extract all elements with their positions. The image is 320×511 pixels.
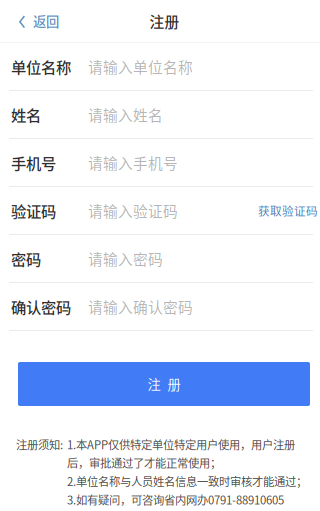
staticText: 密码 [11,247,41,270]
staticText: 请输入姓名 [88,104,163,125]
button[interactable]: 获取验证码 [248,190,318,231]
staticText: 请输入密码 [88,248,163,269]
staticText: 请输入单位名称 [88,56,193,77]
staticText: 3.如有疑问，可咨询省内网办0791-88910605 [67,491,284,508]
staticText: 手机号 [11,151,56,174]
staticText: 后，审批通过了才能正常使用； [67,454,221,471]
staticText: 请输入验证码 [88,200,178,221]
staticText: 返回 [33,11,59,31]
staticText: 姓名 [11,103,41,126]
staticText: 1.本APP仅供特定单位特定用户使用，用户注册 [67,436,295,452]
button[interactable]: 返回 [0,0,69,42]
staticText: 注册须知: [16,436,63,452]
staticText: 单位名称 [11,55,71,78]
staticText: 验证码 [11,199,56,222]
staticText: 2.单位名称与人员姓名信息一致时审核才能通过； [67,473,307,489]
staticText: 获取验证码 [258,202,318,219]
staticText: 请输入手机号 [88,152,178,173]
staticText: 注册 [149,10,179,32]
staticText: 确认密码 [11,295,71,318]
staticText: 注 册 [147,374,180,394]
button[interactable]: 注 册 [18,362,310,406]
staticText: 请输入确认密码 [88,296,193,317]
